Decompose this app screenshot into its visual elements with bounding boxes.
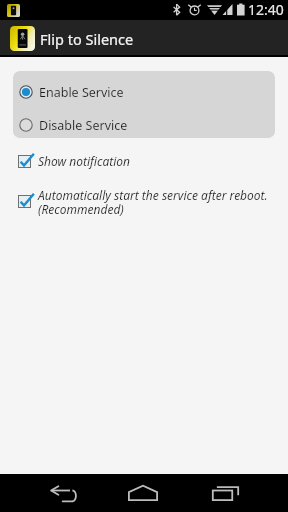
button[interactable]: Disable Service xyxy=(13,111,275,138)
button[interactable]: Enable Service xyxy=(13,78,275,106)
staticText: Disable Service xyxy=(39,117,128,134)
staticText: Automatically start the service after re… xyxy=(38,187,268,218)
button[interactable]: Recent apps xyxy=(199,474,252,512)
staticText: 12:40 xyxy=(248,0,284,19)
button[interactable]: Home xyxy=(116,474,169,512)
button[interactable]: Automatically start the service after re… xyxy=(0,187,288,218)
button[interactable]: Show notification xyxy=(0,153,288,169)
staticText: Flip to Silence xyxy=(40,29,134,49)
staticText: Show notification xyxy=(38,153,131,169)
button[interactable]: Back xyxy=(37,474,90,512)
staticText: Enable Service xyxy=(39,84,124,101)
